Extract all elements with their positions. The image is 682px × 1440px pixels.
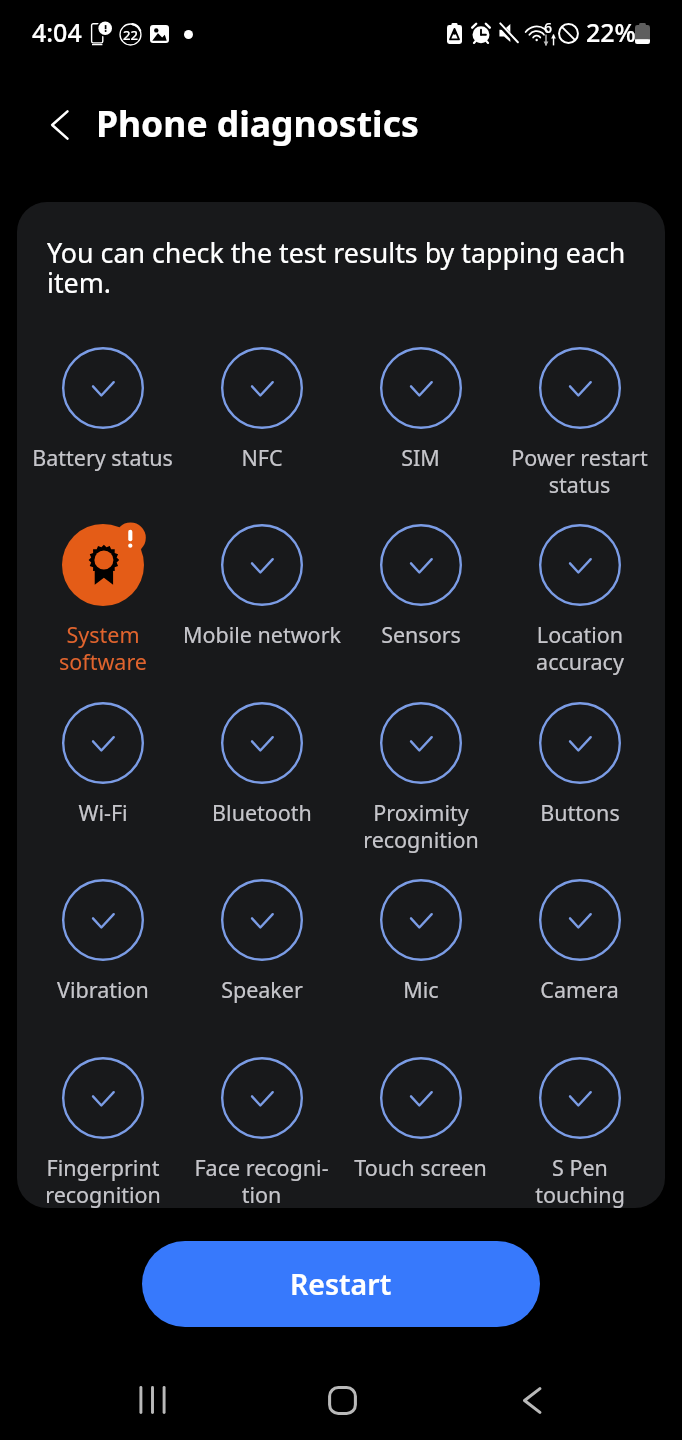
staticText: Power restart status: [511, 443, 648, 499]
staticText: System software: [59, 620, 147, 676]
staticText: Battery status: [32, 443, 173, 472]
button[interactable]: Face recogni- tion: [182, 1057, 341, 1207]
staticText: Buttons: [540, 798, 620, 827]
button[interactable]: Recent apps: [112, 1360, 192, 1440]
staticText: S Pen touching: [535, 1153, 625, 1208]
staticText: Speaker: [221, 975, 303, 1004]
staticText: Mic: [403, 975, 439, 1004]
button[interactable]: Back: [492, 1360, 572, 1440]
staticText: Phone diagnostics: [96, 99, 419, 147]
button[interactable]: Mobile network: [182, 524, 341, 674]
button[interactable]: Camera: [500, 879, 659, 1029]
button[interactable]: Mic: [341, 879, 500, 1029]
staticText: Vibration: [57, 975, 149, 1004]
staticText: 4:04: [32, 15, 82, 49]
staticText: NFC: [241, 443, 283, 472]
button[interactable]: Battery status: [23, 347, 182, 497]
button[interactable]: System software: [23, 524, 182, 674]
staticText: Face recogni- tion: [194, 1153, 329, 1208]
staticText: Bluetooth: [212, 798, 312, 827]
button[interactable]: S Pen touching: [500, 1057, 659, 1207]
button[interactable]: Restart: [142, 1241, 540, 1327]
staticText: Touch screen: [354, 1153, 487, 1182]
button[interactable]: Sensors: [341, 524, 500, 674]
button[interactable]: Vibration: [23, 879, 182, 1029]
staticText: Sensors: [381, 620, 461, 649]
staticText: Location accuracy: [536, 620, 624, 676]
button[interactable]: Location accuracy: [500, 524, 659, 674]
button[interactable]: Power restart status: [500, 347, 659, 497]
button[interactable]: NFC: [182, 347, 341, 497]
button[interactable]: Speaker: [182, 879, 341, 1029]
button[interactable]: Fingerprint recognition: [23, 1057, 182, 1207]
staticText: SIM: [401, 443, 440, 472]
button[interactable]: Back: [23, 88, 96, 162]
button[interactable]: Proximity recognition: [341, 702, 500, 852]
staticText: Restart: [290, 1265, 392, 1304]
staticText: Mobile network: [183, 620, 341, 649]
button[interactable]: SIM: [341, 347, 500, 497]
staticText: Proximity recognition: [363, 798, 479, 854]
button[interactable]: Bluetooth: [182, 702, 341, 852]
staticText: Wi-Fi: [78, 798, 128, 827]
staticText: Fingerprint recognition: [45, 1153, 161, 1208]
staticText: Camera: [540, 975, 619, 1004]
button[interactable]: Touch screen: [341, 1057, 500, 1207]
staticText: 22: [123, 26, 138, 44]
staticText: You can check the test results by tappin…: [47, 234, 626, 300]
staticText: 22%: [586, 15, 636, 49]
button[interactable]: Wi-Fi: [23, 702, 182, 852]
button[interactable]: Buttons: [500, 702, 659, 852]
staticText: 6: [544, 18, 553, 37]
button[interactable]: Home: [302, 1360, 382, 1440]
